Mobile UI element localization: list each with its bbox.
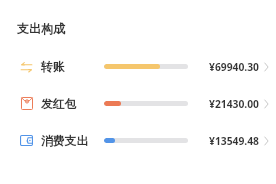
button[interactable]: 发红包 [0,85,276,122]
staticText: ¥69940.30 [209,60,260,74]
staticText: ¥13549.48 [209,134,260,148]
staticText: ¥21430.00 [209,97,260,111]
staticText: 发红包 [41,97,77,112]
button[interactable]: View 转账 details [260,58,272,75]
button[interactable]: 转账 [0,48,276,85]
staticText: 消费支出 [41,134,89,149]
staticText: 支出构成 [17,21,65,36]
staticText: 转账 [41,60,65,75]
button[interactable]: View 发红包 details [260,95,272,112]
button[interactable]: View 消费支出 details [260,132,272,149]
button[interactable]: 消费支出 [0,122,276,159]
